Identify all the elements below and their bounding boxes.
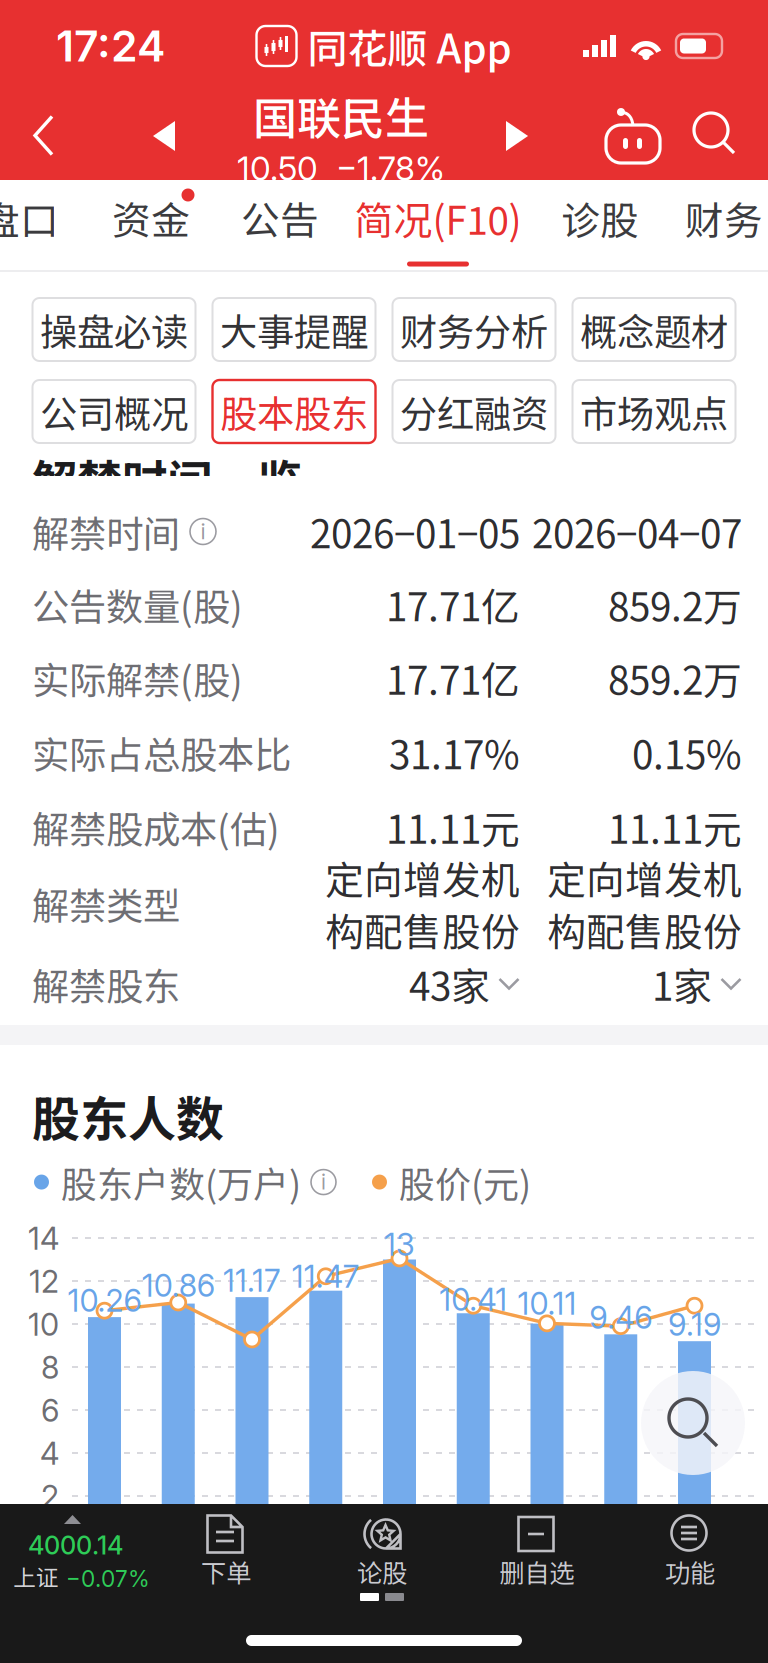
staticText: 国联民生 (253, 83, 429, 147)
staticText: 操盘必读 (40, 302, 188, 357)
button[interactable]: 公告 (225, 180, 335, 270)
staticText: 构配售股份 (547, 901, 742, 957)
staticText: 10.50 −1.78% (237, 148, 445, 188)
staticText: 公告数量(股) (32, 577, 243, 632)
staticText: 10.41 (439, 1281, 507, 1318)
staticText: 实际占总股本比 (32, 725, 291, 780)
staticText: 6 (41, 1392, 59, 1429)
staticText: 解禁类型 (32, 876, 180, 931)
staticText: 公告 (241, 190, 319, 246)
staticText: 市场观点 (580, 384, 728, 439)
button[interactable]: 市场观点 (572, 380, 735, 443)
button[interactable]: 删自选 (477, 1504, 597, 1620)
button[interactable]: 论股 (322, 1504, 442, 1620)
staticText: 股东人数 (32, 1081, 224, 1150)
button[interactable]: 盘口 (0, 180, 70, 270)
staticText: 定向增发机 (547, 849, 742, 905)
staticText: 859.2万 (608, 576, 742, 632)
staticText: 2026−01−05 (310, 503, 520, 559)
button[interactable]: 股本股东 (212, 380, 375, 443)
staticText: 资金 (112, 190, 190, 246)
staticText: 2026−04−07 (532, 503, 742, 559)
staticText: 43家 (409, 956, 490, 1012)
staticText: 股东户数(万户) (61, 1156, 301, 1208)
staticText: 11.11元 (608, 799, 742, 855)
staticText: 13 (384, 1226, 415, 1263)
staticText: 诊股 (561, 190, 639, 246)
staticText: 11.17 (223, 1262, 281, 1299)
staticText: 股本股东 (220, 384, 368, 439)
staticText: 859.2万 (608, 650, 742, 706)
staticText: 10.86 (142, 1267, 215, 1304)
button[interactable]: 分红融资 (392, 380, 555, 443)
staticText: 下单 (201, 1553, 251, 1590)
button[interactable]: 概念题材 (572, 298, 735, 361)
staticText: i (200, 518, 205, 544)
staticText: 实际解禁(股) (32, 651, 243, 705)
staticText: 17:24 (56, 20, 165, 72)
staticText: 0.15% (632, 724, 742, 780)
button[interactable]: 大事提醒 (212, 298, 375, 361)
staticText: 解禁股成本(估) (32, 800, 280, 854)
staticText: 财务 (685, 190, 763, 246)
staticText: 股价(元) (399, 1156, 531, 1208)
staticText: 概念题材 (580, 302, 728, 357)
button[interactable]: 财务 (674, 180, 768, 270)
staticText: −0.07% (66, 1565, 150, 1592)
button[interactable]: 公司概况 (32, 380, 195, 443)
button[interactable]: 财务分析 (392, 298, 555, 361)
button[interactable]: AI assistant (590, 92, 676, 180)
staticText: 12 (29, 1263, 59, 1300)
staticText: 解禁时间 (32, 504, 180, 559)
staticText: 8 (41, 1349, 59, 1386)
staticText: 1家 (652, 956, 712, 1012)
staticText: 解禁时间一览 (32, 446, 302, 511)
staticText: 10.26 (67, 1282, 141, 1319)
button[interactable]: Search (676, 92, 768, 180)
staticText: 4 (40, 1435, 59, 1472)
staticText: 财务分析 (400, 302, 548, 357)
button[interactable]: 功能 (630, 1504, 750, 1620)
staticText: 功能 (665, 1553, 715, 1590)
staticText: 9.19 (668, 1306, 721, 1343)
staticText: 分红融资 (400, 384, 548, 439)
staticText: i (321, 1170, 326, 1195)
staticText: 11.11元 (386, 799, 520, 855)
staticText: 上证 (13, 1560, 59, 1593)
button[interactable]: Next stock (476, 92, 559, 180)
button[interactable]: 资金 (96, 180, 206, 270)
staticText: 删自选 (499, 1553, 574, 1590)
staticText: 简况(F10) (354, 190, 521, 246)
staticText: 构配售股份 (325, 901, 520, 957)
staticText: 31.17% (389, 724, 520, 780)
staticText: 14 (28, 1220, 59, 1257)
button[interactable]: 诊股 (545, 180, 655, 270)
staticText: 论股 (357, 1553, 407, 1590)
staticText: 17.71亿 (386, 576, 520, 632)
staticText: 解禁股东 (32, 957, 180, 1011)
staticText: 2 (41, 1478, 59, 1515)
button[interactable]: 上证 index (0, 1504, 186, 1620)
staticText: 11.47 (292, 1258, 360, 1295)
staticText: 17.71亿 (386, 650, 520, 706)
staticText: 10.11 (517, 1285, 576, 1322)
staticText: 定向增发机 (325, 849, 520, 905)
button[interactable]: 操盘必读 (32, 298, 195, 361)
button[interactable]: 下单 (166, 1504, 286, 1620)
button[interactable]: Previous stock (123, 92, 206, 180)
button[interactable]: 简况(F10) (333, 180, 543, 270)
staticText: 10 (28, 1306, 59, 1343)
staticText: 盘口 (0, 190, 59, 246)
staticText: 同花顺 App (307, 17, 511, 75)
staticText: 9.46 (589, 1299, 652, 1336)
button[interactable]: Back (0, 92, 92, 180)
staticText: 4000.14 (28, 1530, 123, 1561)
staticText: 公司概况 (40, 384, 188, 439)
staticText: 大事提醒 (220, 302, 368, 357)
